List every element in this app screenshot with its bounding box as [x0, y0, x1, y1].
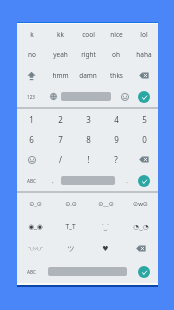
staticText: haha — [136, 50, 152, 59]
button[interactable]: Shift — [17, 65, 46, 86]
staticText: yeah — [53, 50, 68, 59]
staticText: ? — [114, 154, 118, 165]
button[interactable]: 9 — [102, 129, 130, 149]
staticText: 5 — [142, 114, 147, 125]
button[interactable]: / — [46, 149, 74, 170]
staticText: 2 — [58, 114, 63, 125]
staticText: ˙‿˙ — [102, 222, 109, 231]
button[interactable]: 8 — [74, 129, 102, 149]
button[interactable]: Backspace — [123, 237, 158, 260]
button[interactable]: 123 — [17, 86, 45, 107]
staticText: kk — [57, 30, 64, 39]
staticText: 6 — [29, 134, 34, 145]
button[interactable]: lol — [130, 24, 158, 44]
button[interactable]: Backspace — [130, 65, 158, 86]
button[interactable]: Space — [48, 267, 127, 276]
button[interactable]: k — [17, 24, 46, 44]
button[interactable]: kk — [46, 24, 74, 44]
button[interactable]: ♥ — [88, 237, 123, 260]
staticText: T_T — [65, 222, 76, 231]
staticText: cool — [82, 30, 95, 39]
button[interactable]: Enter — [138, 91, 150, 103]
button[interactable]: damn — [74, 65, 102, 86]
button[interactable]: Enter — [138, 175, 150, 187]
button[interactable]: ⊙.⊙ — [53, 193, 88, 215]
button[interactable]: right — [74, 44, 102, 65]
staticText: oh — [112, 50, 120, 59]
staticText: ⊙_⊙ — [29, 200, 42, 208]
button[interactable]: , — [45, 170, 61, 191]
staticText: ⊙w⊙ — [133, 200, 148, 208]
button[interactable]: haha — [130, 44, 158, 65]
staticText: ⊙.⊙ — [65, 200, 77, 208]
button[interactable]: ツ — [53, 237, 88, 260]
button[interactable]: Enter — [138, 266, 150, 278]
button[interactable]: Emoji — [111, 86, 138, 107]
button[interactable]: Emoji — [17, 149, 46, 170]
button[interactable]: ? — [102, 149, 130, 170]
button[interactable]: Change language — [45, 86, 61, 107]
button[interactable]: 0 — [130, 129, 158, 149]
button[interactable]: ⊙__⊙ — [88, 193, 123, 215]
staticText: 7 — [58, 134, 63, 145]
staticText: ¯\_(ツ)_/¯ — [28, 246, 43, 251]
button[interactable]: 1 — [17, 109, 46, 129]
staticText: ABC — [27, 178, 36, 184]
staticText: ⊙__⊙ — [98, 200, 114, 208]
staticText: 8 — [86, 134, 91, 145]
button[interactable]: 2 — [46, 109, 74, 129]
button[interactable]: ! — [74, 149, 102, 170]
staticText: 123 — [27, 94, 35, 100]
staticText: 4 — [114, 114, 119, 125]
button[interactable]: Backspace — [130, 149, 158, 170]
button[interactable]: ABC — [17, 170, 45, 191]
staticText: no — [28, 50, 36, 59]
button[interactable]: yeah — [46, 44, 74, 65]
button[interactable]: thks — [102, 65, 130, 86]
staticText: damn — [79, 71, 97, 80]
button[interactable]: 5 — [130, 109, 158, 129]
button[interactable]: hmm — [46, 65, 74, 86]
button[interactable]: ◔‿◔ — [123, 215, 158, 237]
button[interactable]: oh — [102, 44, 130, 65]
button[interactable]: 4 — [102, 109, 130, 129]
staticText: lol — [140, 30, 148, 39]
staticText: ◔‿◔ — [133, 222, 149, 231]
button[interactable]: ¯\_(ツ)_/¯ — [17, 237, 53, 260]
staticText: 9 — [114, 134, 119, 145]
staticText: nice — [110, 30, 123, 39]
button[interactable]: 6 — [17, 129, 46, 149]
staticText: hmm — [52, 71, 69, 80]
staticText: / — [59, 154, 62, 165]
button[interactable]: cool — [74, 24, 102, 44]
staticText: 1 — [29, 114, 34, 125]
button[interactable]: no — [17, 44, 46, 65]
staticText: , — [52, 177, 54, 184]
button[interactable]: ABC — [17, 260, 45, 283]
staticText: ♥ — [102, 245, 109, 253]
staticText: k — [30, 30, 34, 39]
staticText: right — [81, 50, 96, 59]
staticText: 3 — [86, 114, 91, 125]
button[interactable]: T_T — [53, 215, 88, 237]
button[interactable]: Space — [61, 92, 111, 101]
button[interactable]: Space — [61, 176, 115, 185]
staticText: ! — [87, 154, 90, 165]
button[interactable]: ◉_◉ — [17, 215, 53, 237]
staticText: 0 — [142, 134, 147, 145]
staticText: ◉_◉ — [28, 222, 43, 231]
staticText: thks — [110, 71, 123, 80]
button[interactable]: ⊙w⊙ — [123, 193, 158, 215]
button[interactable]: ⊙_⊙ — [17, 193, 53, 215]
button[interactable]: nice — [102, 24, 130, 44]
button[interactable]: ˙‿˙ — [88, 215, 123, 237]
button[interactable]: 7 — [46, 129, 74, 149]
staticText: ABC — [27, 269, 36, 275]
button[interactable]: 3 — [74, 109, 102, 129]
staticText: ツ — [67, 244, 75, 253]
staticText: . — [126, 177, 128, 184]
